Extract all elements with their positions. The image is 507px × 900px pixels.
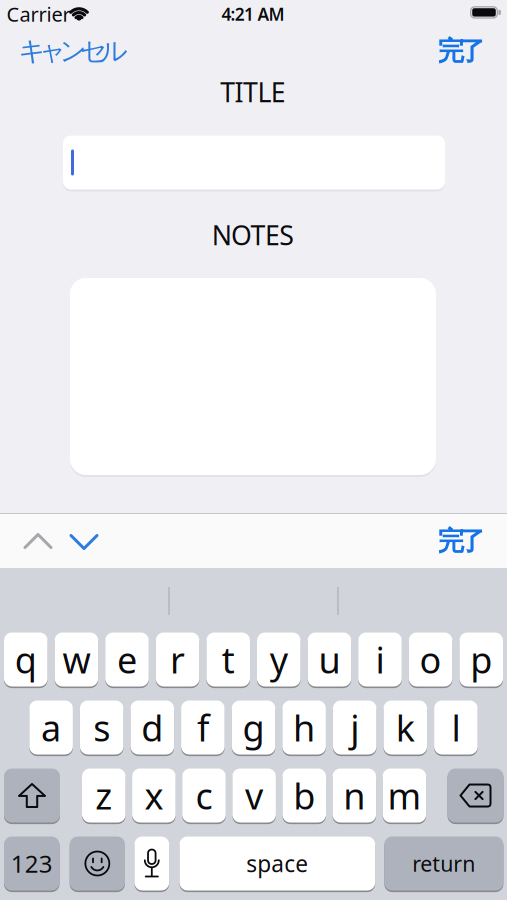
staticText: a xyxy=(41,704,61,751)
button[interactable]: キャンセル xyxy=(18,35,127,67)
staticText: space xyxy=(246,848,308,878)
button[interactable]: Next field xyxy=(71,535,97,548)
button[interactable]: i xyxy=(358,632,402,686)
staticText: s xyxy=(93,704,110,751)
button[interactable]: j xyxy=(333,700,376,754)
staticText: k xyxy=(396,704,415,751)
staticText: l xyxy=(451,704,460,751)
staticText: u xyxy=(318,636,340,683)
staticText: 完了 xyxy=(437,525,485,557)
staticText: h xyxy=(293,704,315,751)
button[interactable]: c xyxy=(182,768,226,822)
staticText: r xyxy=(170,636,185,683)
button[interactable]: g xyxy=(232,700,275,754)
staticText: return xyxy=(412,849,475,878)
staticText: v xyxy=(245,772,263,819)
staticText: 123 xyxy=(11,848,53,879)
button[interactable]: z xyxy=(82,768,126,822)
staticText: o xyxy=(420,636,442,683)
staticText: c xyxy=(195,772,212,819)
staticText: キャンセル xyxy=(18,35,127,67)
button[interactable]: n xyxy=(332,768,376,822)
staticText: i xyxy=(375,636,384,683)
staticText: p xyxy=(470,636,492,683)
staticText: f xyxy=(197,704,209,751)
button[interactable]: Shift xyxy=(4,768,60,822)
button[interactable]: w xyxy=(55,632,98,686)
staticText: m xyxy=(387,772,421,819)
button[interactable]: d xyxy=(130,700,174,754)
staticText: e xyxy=(117,636,137,683)
button[interactable]: Title xyxy=(63,135,445,189)
button[interactable]: u xyxy=(308,632,351,686)
staticText: q xyxy=(15,636,37,683)
staticText: Carrier xyxy=(6,1,70,27)
button[interactable]: h xyxy=(282,700,326,754)
button[interactable]: b xyxy=(282,768,326,822)
button[interactable]: x xyxy=(132,768,176,822)
staticText: b xyxy=(293,772,315,819)
button[interactable]: Numbers xyxy=(4,836,59,890)
staticText: j xyxy=(350,704,359,751)
staticText: n xyxy=(343,772,365,819)
staticText: w xyxy=(62,636,90,683)
staticText: x xyxy=(144,772,163,819)
button[interactable]: 完了 xyxy=(437,525,485,557)
staticText: t xyxy=(222,636,235,683)
staticText: 4:21 AM xyxy=(221,2,285,25)
button[interactable]: y xyxy=(257,632,301,686)
button[interactable]: l xyxy=(434,700,478,754)
button[interactable]: r xyxy=(156,632,199,686)
button[interactable]: Previous field xyxy=(25,534,51,547)
button[interactable]: Dictate xyxy=(134,836,169,890)
staticText: NOTES xyxy=(212,217,294,253)
button[interactable]: Delete xyxy=(447,768,503,822)
button[interactable]: s xyxy=(80,700,123,754)
button[interactable]: a xyxy=(29,700,73,754)
button[interactable]: e xyxy=(105,632,149,686)
staticText: y xyxy=(270,636,288,683)
staticText: d xyxy=(141,704,163,751)
button[interactable]: f xyxy=(181,700,225,754)
button[interactable]: t xyxy=(206,632,250,686)
button[interactable]: m xyxy=(383,768,426,822)
button[interactable]: k xyxy=(383,700,427,754)
button[interactable]: o xyxy=(409,632,452,686)
button[interactable]: q xyxy=(4,632,48,686)
staticText: g xyxy=(242,704,264,751)
button[interactable]: 完了 xyxy=(437,35,485,67)
staticText: z xyxy=(95,772,112,819)
button[interactable]: Space xyxy=(179,836,375,890)
button[interactable]: Emoji xyxy=(70,836,125,890)
button[interactable]: Return xyxy=(384,836,503,890)
staticText: TITLE xyxy=(220,74,286,110)
button[interactable]: p xyxy=(459,632,503,686)
button[interactable]: v xyxy=(232,768,276,822)
staticText: 完了 xyxy=(437,35,485,67)
